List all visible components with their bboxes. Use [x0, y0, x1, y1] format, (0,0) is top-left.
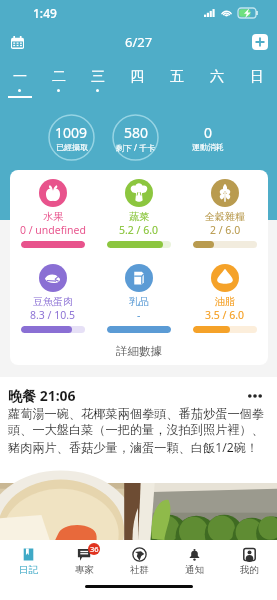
- button[interactable]: 油脂: [182, 264, 268, 333]
- staticText: -: [137, 308, 141, 322]
- staticText: 六: [210, 68, 224, 86]
- staticText: 1009: [55, 123, 88, 142]
- staticText: 日記: [19, 564, 38, 576]
- button[interactable]: 水果: [10, 179, 96, 248]
- staticText: 日: [250, 68, 264, 86]
- button[interactable]: Add entry: [252, 34, 268, 50]
- button[interactable]: 全穀雜糧: [182, 179, 268, 248]
- staticText: 三: [91, 68, 105, 86]
- button[interactable]: 乳品: [96, 264, 182, 333]
- button[interactable]: 豆魚蛋肉: [10, 264, 96, 333]
- staticText: 油脂: [215, 295, 235, 308]
- staticText: 我的: [240, 564, 259, 576]
- button[interactable]: 日: [237, 62, 277, 102]
- button[interactable]: 詳細數據: [10, 337, 268, 365]
- staticText: 剩下 / 千卡: [116, 142, 156, 153]
- button[interactable]: 五: [157, 62, 197, 102]
- staticText: 580: [124, 123, 149, 142]
- button[interactable]: 二: [39, 62, 78, 102]
- button[interactable]: 通知: [167, 540, 222, 582]
- button[interactable]: Meal photo 1: [0, 483, 138, 540]
- staticText: 1:49: [33, 5, 57, 21]
- staticText: 0 / undefined: [20, 223, 86, 237]
- staticText: 運動消耗: [192, 142, 224, 152]
- staticText: 5.2 / 6.0: [119, 223, 159, 237]
- button[interactable]: 36: [56, 540, 112, 582]
- staticText: 2 / 6.0: [210, 223, 241, 237]
- button[interactable]: 一: [0, 62, 39, 102]
- staticText: 豆魚蛋肉: [33, 295, 73, 308]
- staticText: 晚餐 21:06: [8, 386, 76, 405]
- button[interactable]: Meal photo 2: [138, 483, 277, 540]
- button[interactable]: 0: [184, 114, 231, 161]
- button[interactable]: 580: [112, 114, 159, 161]
- button[interactable]: 我的: [222, 540, 277, 582]
- button[interactable]: 三: [78, 62, 117, 102]
- button[interactable]: 六: [197, 62, 237, 102]
- staticText: 水果: [43, 210, 63, 223]
- button[interactable]: 四: [117, 62, 157, 102]
- staticText: 四: [130, 68, 144, 86]
- staticText: 二: [52, 68, 66, 86]
- button[interactable]: Calendar: [5, 30, 29, 54]
- staticText: 專家: [75, 564, 94, 576]
- button[interactable]: 社群: [112, 540, 167, 582]
- staticText: 五: [170, 68, 184, 86]
- staticText: 蘿蔔湯一碗、花椰菜兩個拳頭、番茄炒蛋一個拳頭、一大盤白菜（一把的量，沒拍到照片裡…: [8, 406, 274, 456]
- staticText: 已經攝取: [56, 142, 88, 152]
- staticText: 6/27: [125, 33, 153, 51]
- staticText: 一: [13, 68, 27, 86]
- staticText: 8.3 / 10.5: [30, 308, 76, 322]
- button[interactable]: 日記: [0, 540, 56, 582]
- staticText: 蔬菜: [129, 210, 149, 223]
- staticText: 詳細數據: [116, 344, 162, 358]
- button[interactable]: 1009: [48, 114, 95, 161]
- button[interactable]: 蔬菜: [96, 179, 182, 248]
- staticText: 全穀雜糧: [205, 210, 245, 223]
- staticText: 乳品: [129, 295, 149, 308]
- staticText: 3.5 / 6.0: [205, 308, 245, 322]
- button[interactable]: More options: [243, 384, 267, 408]
- staticText: 0: [204, 123, 213, 142]
- staticText: 36: [90, 544, 99, 554]
- staticText: 通知: [185, 564, 204, 576]
- staticText: 社群: [130, 564, 149, 576]
